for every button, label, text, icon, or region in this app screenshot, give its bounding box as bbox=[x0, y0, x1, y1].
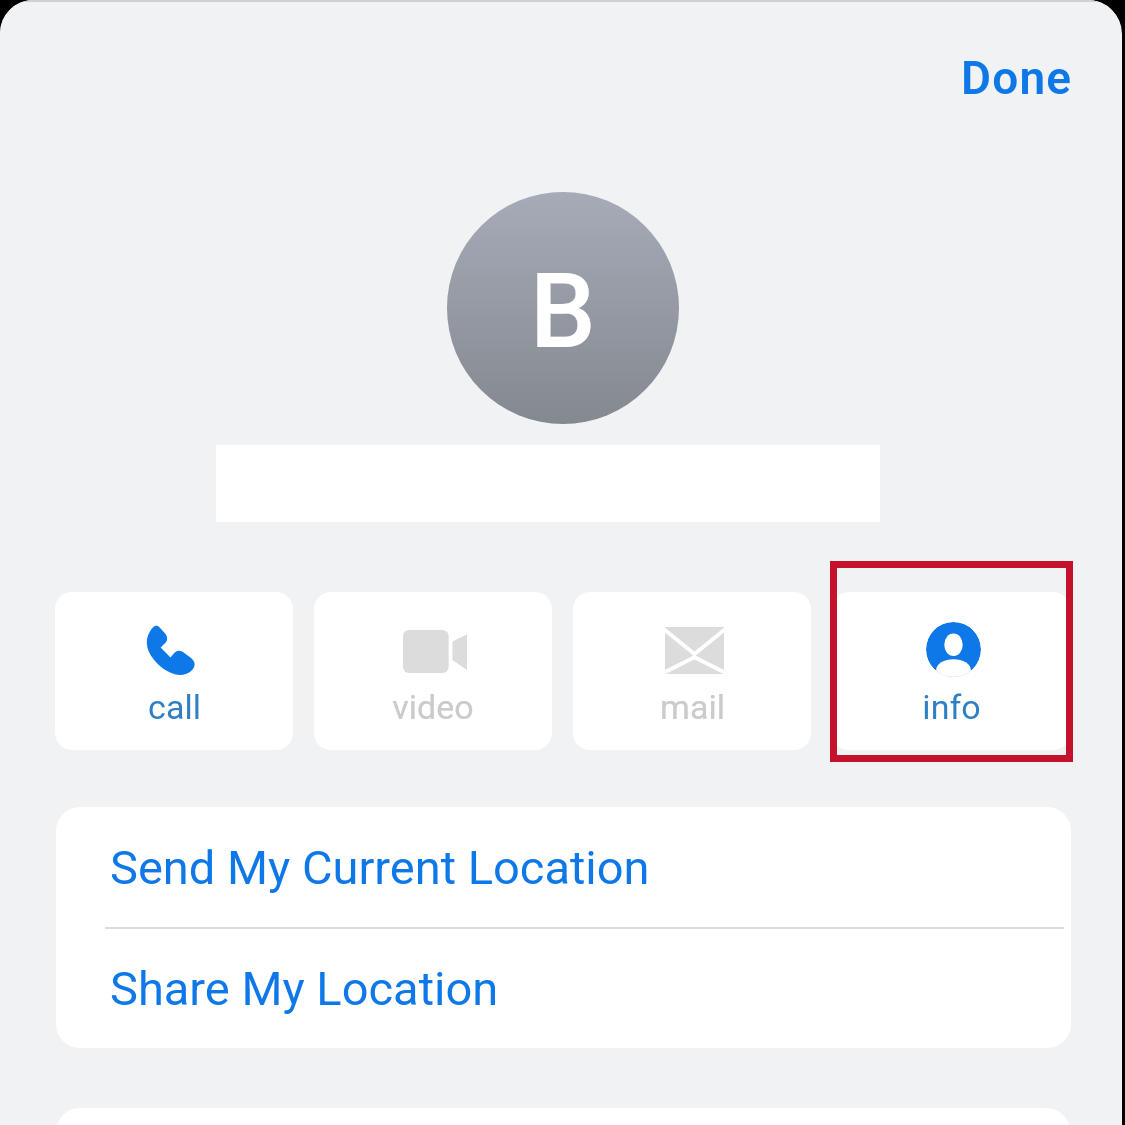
staticText: Done bbox=[961, 51, 1073, 105]
button[interactable]: Video call bbox=[314, 592, 552, 750]
button[interactable]: Share My Location bbox=[56, 929, 1071, 1048]
staticText: call bbox=[148, 687, 201, 727]
staticText: info bbox=[922, 687, 981, 727]
staticText: Send My Current Location bbox=[110, 840, 650, 895]
staticText: B bbox=[530, 251, 596, 373]
button[interactable]: Done bbox=[946, 43, 1088, 113]
staticText: video bbox=[392, 687, 474, 727]
button[interactable]: Call bbox=[55, 592, 293, 750]
button[interactable]: Mail bbox=[573, 592, 811, 750]
staticText: mail bbox=[660, 687, 725, 727]
button[interactable]: Info bbox=[832, 592, 1070, 750]
staticText: Share My Location bbox=[110, 961, 499, 1016]
button[interactable]: Send My Current Location bbox=[56, 807, 1071, 927]
